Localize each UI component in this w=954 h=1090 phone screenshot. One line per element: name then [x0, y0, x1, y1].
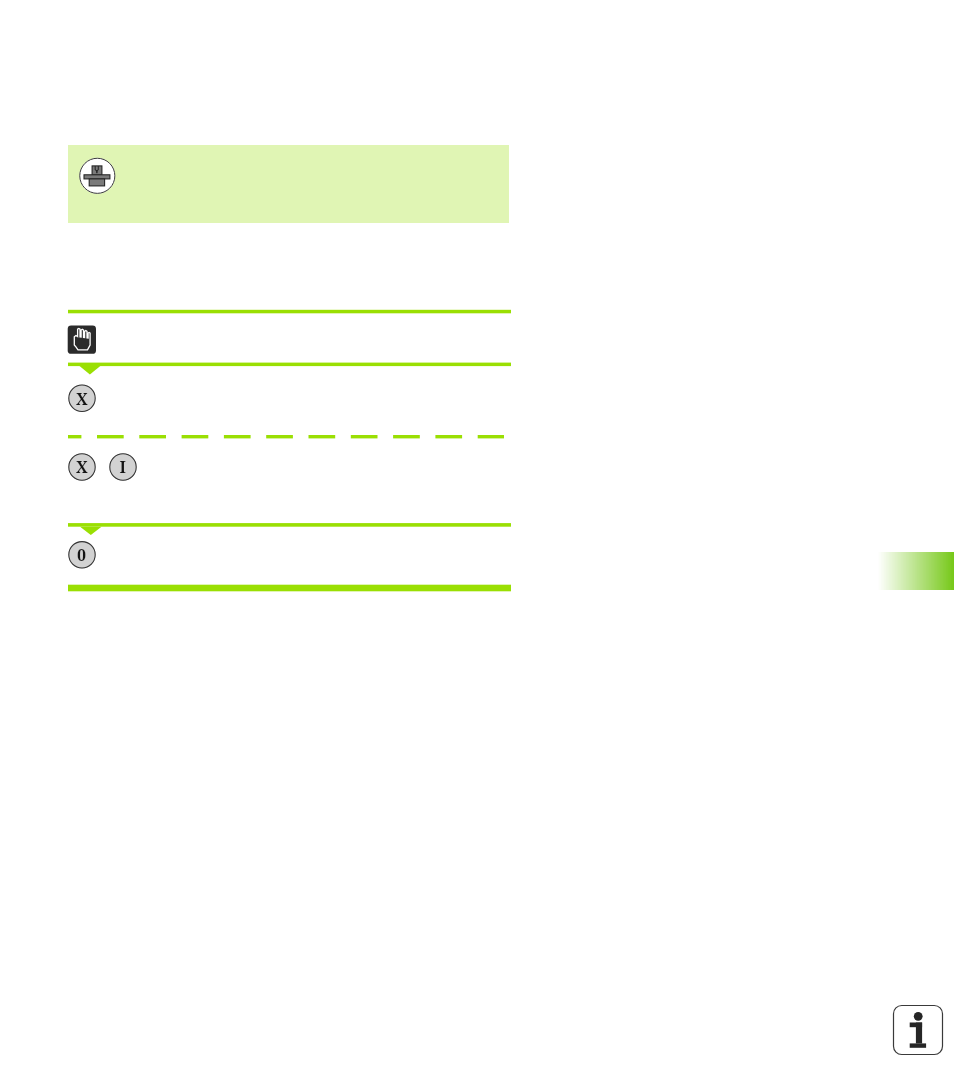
button[interactable]: Marker X	[67, 452, 96, 481]
button[interactable]: Marker X	[67, 383, 96, 412]
button[interactable]: Pan tool	[67, 325, 97, 355]
button[interactable]: Marker I	[108, 452, 137, 481]
button[interactable]: Marker 0	[67, 540, 96, 569]
button[interactable]: Info	[893, 1005, 943, 1055]
button[interactable]: Machine	[79, 157, 117, 195]
